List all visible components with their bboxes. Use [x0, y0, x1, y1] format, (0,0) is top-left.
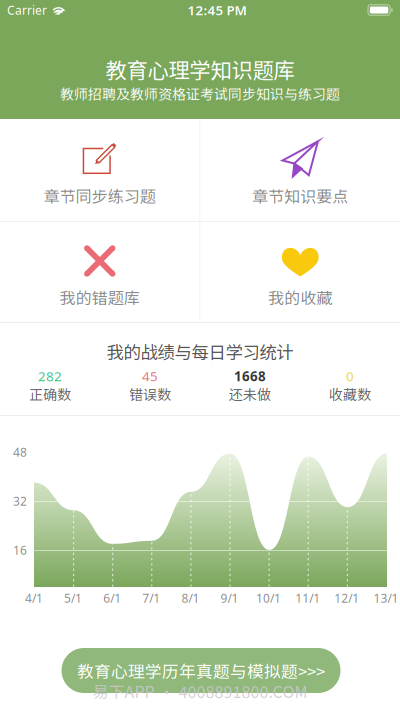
staticText: 8/1	[181, 590, 199, 606]
staticText: 错误数	[129, 384, 171, 404]
staticText: 4/1	[25, 590, 43, 606]
staticText: 12:45 PM	[187, 1, 246, 19]
staticText: 48	[13, 444, 27, 460]
staticText: 6/1	[103, 590, 121, 606]
staticText: 32	[13, 493, 27, 509]
staticText: 教师招聘及教师资格证考试同步知识与练习题	[60, 83, 340, 104]
staticText: 教育心理学知识题库	[105, 54, 294, 84]
staticText: 还未做	[229, 384, 271, 404]
staticText: Carrier	[7, 2, 47, 18]
staticText: 9/1	[220, 590, 238, 606]
staticText: 我的收藏	[268, 285, 332, 309]
staticText: 教育心理学历年真题与模拟题>>>	[77, 658, 325, 682]
staticText: 0	[346, 367, 354, 385]
staticText: 易下APP · 4008891800.COM	[92, 679, 307, 703]
button[interactable]: 教育心理学历年真题与模拟题>>>	[61, 648, 340, 693]
staticText: 45	[142, 367, 158, 385]
staticText: 1668	[234, 367, 266, 385]
staticText: 10/1	[256, 590, 281, 606]
staticText: 正确数	[29, 384, 71, 404]
staticText: 13/1	[373, 590, 398, 606]
staticText: 章节同步练习题	[44, 184, 156, 207]
staticText: 我的错题库	[60, 285, 140, 309]
staticText: 章节知识要点	[252, 184, 348, 207]
staticText: 282	[38, 367, 62, 385]
staticText: 12/1	[334, 590, 359, 606]
button[interactable]: 章节同步练习题	[0, 119, 199, 221]
button[interactable]: 章节知识要点	[200, 119, 400, 221]
staticText: 16	[13, 542, 27, 558]
staticText: 收藏数	[329, 384, 371, 404]
staticText: 11/1	[295, 590, 320, 606]
staticText: 5/1	[64, 590, 82, 606]
staticText: 我的战绩与每日学习统计	[106, 339, 293, 364]
staticText: 7/1	[142, 590, 160, 606]
button[interactable]: 我的收藏	[200, 222, 400, 322]
button[interactable]: 我的错题库	[0, 222, 199, 322]
